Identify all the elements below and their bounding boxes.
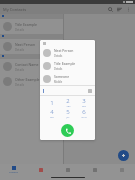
- staticText: Title Example: [54, 61, 76, 66]
- staticText: Someone: [54, 74, 70, 79]
- button[interactable]: Other Example: [0, 74, 63, 89]
- staticText: Contacts: [9, 171, 18, 174]
- button[interactable]: 4: [43, 108, 60, 119]
- button[interactable]: Next Person: [0, 39, 63, 54]
- staticText: My Contacts: [3, 7, 27, 12]
- button[interactable]: Next Person: [40, 46, 95, 59]
- button[interactable]: Search: [106, 5, 115, 14]
- button[interactable]: 1: [43, 97, 60, 108]
- staticText: Mobile: [54, 80, 63, 84]
- button[interactable]: Contact Name: [0, 59, 63, 74]
- button[interactable]: 6: [76, 108, 92, 119]
- staticText: 5: [66, 108, 70, 116]
- button[interactable]: Sort: [115, 5, 124, 14]
- staticText: MNO: [81, 116, 87, 119]
- staticText: Title Example: [15, 22, 37, 27]
- button[interactable]: Add contact: [118, 150, 129, 161]
- staticText: Details: [54, 54, 63, 58]
- button[interactable]: Title Example: [40, 59, 95, 72]
- staticText: 2: [66, 97, 70, 105]
- staticText: Contact Name: [15, 62, 39, 67]
- button[interactable]: 5: [60, 108, 76, 119]
- staticText: DEF: [82, 105, 86, 108]
- staticText: Details: [54, 67, 63, 71]
- staticText: JKL: [66, 116, 70, 119]
- button[interactable]: 2: [60, 97, 76, 108]
- staticText: Details: [15, 28, 24, 32]
- button[interactable]: Someone: [40, 72, 95, 85]
- staticText: Next Person: [54, 48, 74, 53]
- staticText: Next Person: [15, 42, 36, 47]
- staticText: 4: [50, 108, 54, 116]
- button[interactable]: Title Example: [0, 19, 63, 34]
- staticText: GHI: [50, 116, 54, 119]
- button[interactable]: Tab: [54, 164, 81, 176]
- button[interactable]: More options: [124, 5, 133, 14]
- button[interactable]: Tab: [81, 164, 108, 176]
- staticText: Details: [15, 83, 24, 87]
- button[interactable]: Tab: [108, 164, 135, 176]
- button[interactable]: Tab: [27, 164, 54, 176]
- staticText: ABC: [66, 105, 71, 108]
- staticText: 1: [50, 99, 54, 107]
- staticText: Details: [15, 68, 24, 72]
- button[interactable]: 3: [76, 97, 92, 108]
- staticText: 6: [82, 108, 86, 116]
- button[interactable]: Call: [61, 124, 74, 137]
- staticText: 3: [82, 97, 86, 105]
- staticText: Details: [15, 48, 24, 52]
- button[interactable]: Contacts: [0, 164, 27, 176]
- staticText: Other Example: [15, 77, 40, 82]
